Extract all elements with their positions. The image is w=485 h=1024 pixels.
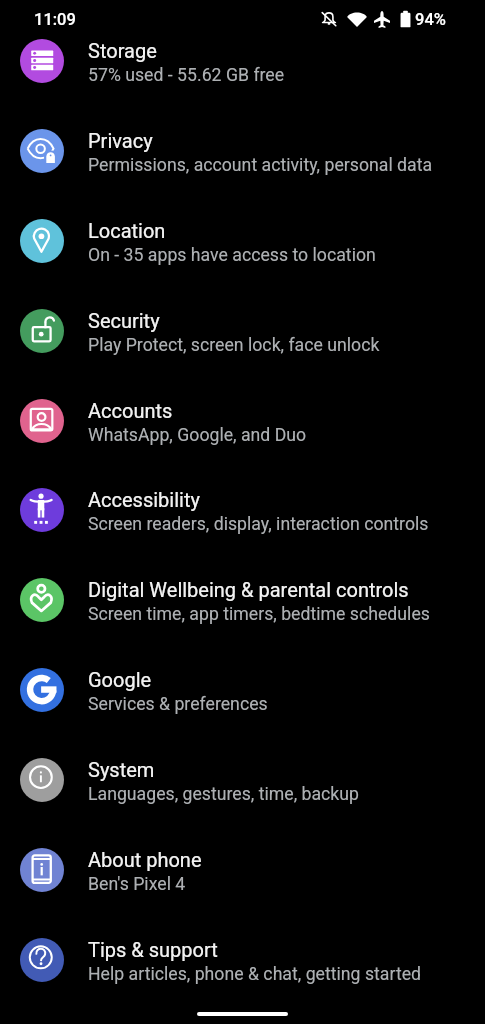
staticText: Play Protect, screen lock, face unlock — [88, 335, 380, 356]
other: Google — [20, 668, 64, 712]
staticText: Services & preferences — [88, 694, 268, 715]
staticText: 11:09 — [34, 10, 76, 29]
other: Storage — [20, 39, 64, 83]
staticText: Ben's Pixel 4 — [88, 874, 186, 895]
staticText: Screen time, app timers, bedtime schedul… — [88, 604, 430, 625]
staticText: WhatsApp, Google, and Duo — [88, 425, 307, 446]
button[interactable]: Privacy — [0, 106, 485, 196]
staticText: On - 35 apps have access to location — [88, 245, 376, 266]
staticText: Location — [88, 219, 166, 242]
other: Accounts — [20, 399, 64, 443]
staticText: Help articles, phone & chat, getting sta… — [88, 964, 422, 985]
staticText: Languages, gestures, time, backup — [88, 784, 360, 805]
staticText: Security — [88, 309, 160, 332]
staticText: 57% used - 55.62 GB free — [88, 65, 285, 86]
staticText: System — [88, 758, 155, 781]
staticText: Privacy — [88, 129, 153, 152]
staticText: Tips & support — [88, 938, 218, 961]
other: Location — [20, 219, 64, 263]
staticText: Digital Wellbeing & parental controls — [88, 578, 409, 601]
button[interactable]: Digital Wellbeing & parental controls — [0, 555, 485, 645]
other: System — [20, 758, 64, 802]
staticText: Accessibility — [88, 488, 200, 511]
staticText: Screen readers, display, interaction con… — [88, 514, 429, 535]
other: Accessibility — [20, 488, 64, 532]
button[interactable]: About phone — [0, 825, 485, 915]
button[interactable]: Google — [0, 645, 485, 735]
button[interactable]: Accessibility — [0, 465, 485, 555]
staticText: Accounts — [88, 399, 173, 422]
staticText: About phone — [88, 848, 202, 871]
staticText: Google — [88, 668, 152, 691]
button[interactable]: Tips & support — [0, 915, 485, 1005]
button[interactable]: Location — [0, 196, 485, 286]
other: Digital Wellbeing & parental controls — [20, 578, 64, 622]
button[interactable]: System — [0, 735, 485, 825]
staticText: Storage — [88, 39, 157, 62]
button[interactable]: Security — [0, 286, 485, 376]
staticText: Permissions, account activity, personal … — [88, 155, 433, 176]
button[interactable]: Storage — [0, 16, 485, 106]
button[interactable]: Accounts — [0, 376, 485, 466]
other: Tips & support — [20, 938, 64, 982]
other: Security — [20, 309, 64, 353]
other: About phone — [20, 848, 64, 892]
other: Privacy — [20, 129, 64, 173]
staticText: 94% — [415, 10, 446, 29]
